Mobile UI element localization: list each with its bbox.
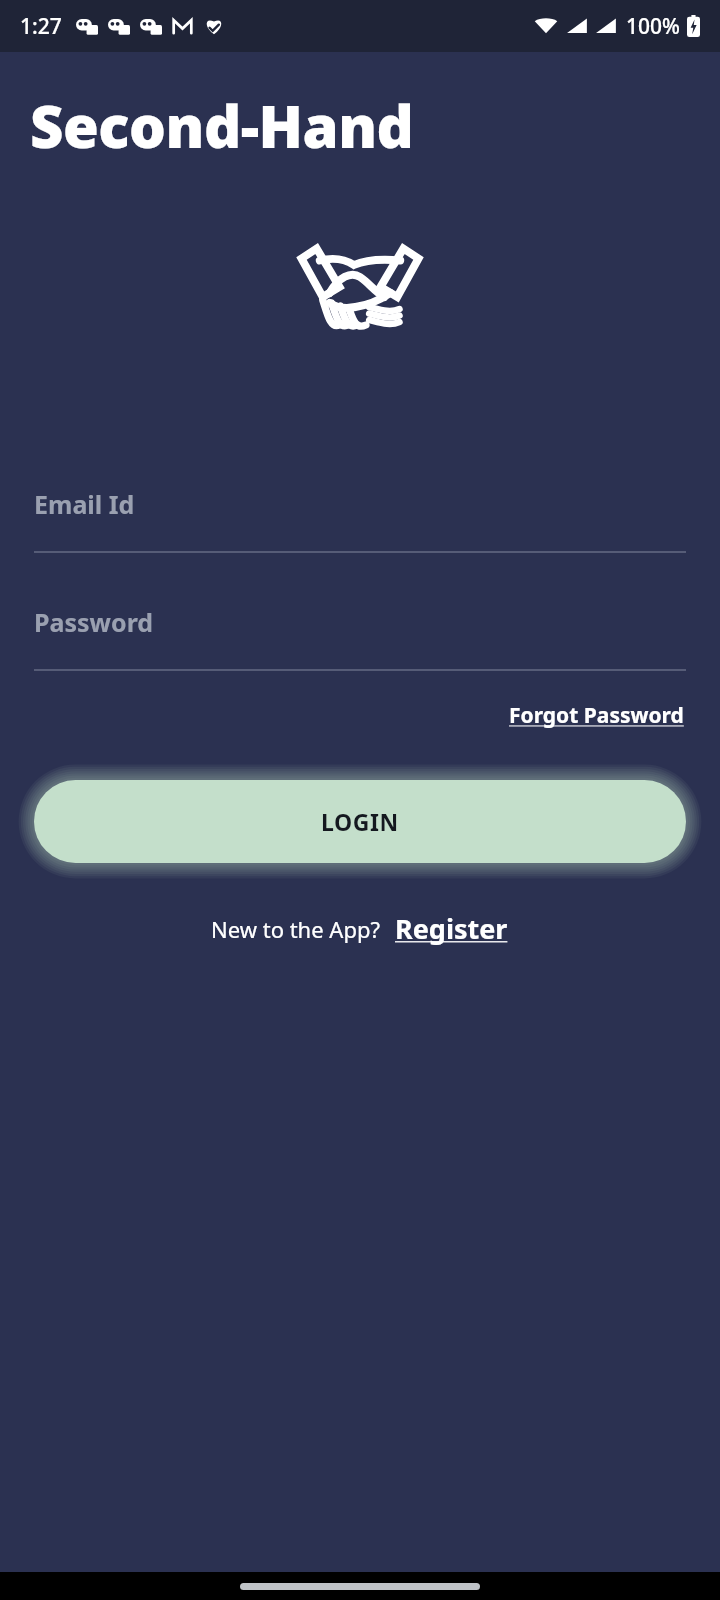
staticText: Email Id: [34, 487, 135, 521]
button[interactable]: Register: [393, 906, 510, 951]
staticText: Register: [395, 910, 508, 947]
staticText: Forgot Password: [509, 701, 684, 730]
button[interactable]: LOGIN: [34, 780, 686, 863]
button[interactable]: Forgot Password: [507, 697, 686, 734]
button[interactable]: Password: [34, 605, 686, 671]
staticText: 1:27: [20, 12, 62, 41]
staticText: 100%: [626, 12, 680, 41]
button[interactable]: Email Id: [34, 487, 686, 553]
staticText: Second-Hand: [30, 86, 414, 165]
staticText: LOGIN: [321, 806, 399, 837]
staticText: New to the App?: [211, 914, 381, 944]
staticText: Password: [34, 605, 154, 639]
